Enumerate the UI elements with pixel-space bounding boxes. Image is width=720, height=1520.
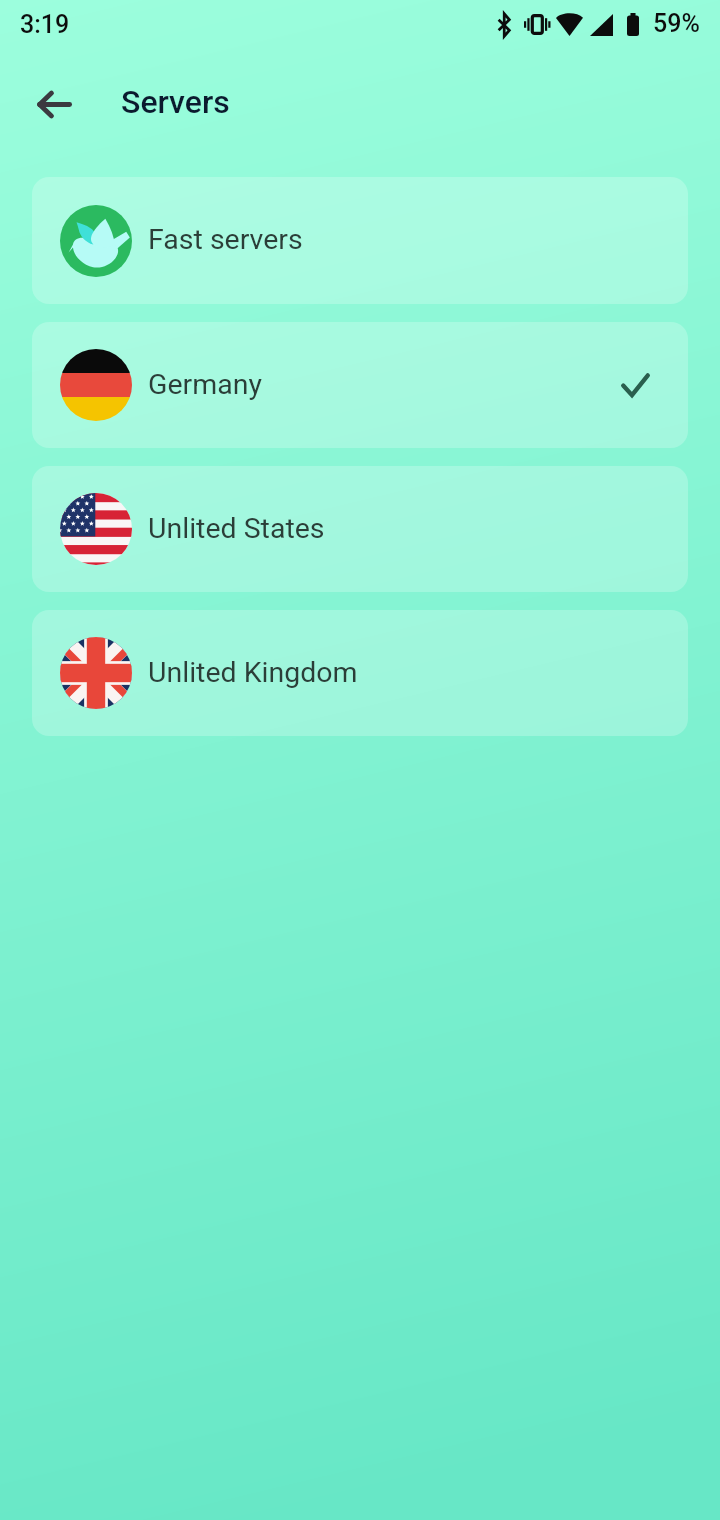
staticText: 59% bbox=[653, 9, 700, 38]
button[interactable]: Unlited Kingdom bbox=[32, 610, 688, 736]
button[interactable]: Germany bbox=[32, 322, 688, 448]
button[interactable]: Back bbox=[23, 73, 85, 135]
staticText: Fast servers bbox=[148, 223, 303, 256]
staticText: 3:19 bbox=[20, 10, 70, 39]
button[interactable]: Unlited States bbox=[32, 466, 688, 592]
staticText: Servers bbox=[121, 83, 230, 121]
staticText: Unlited States bbox=[148, 512, 325, 545]
staticText: Unlited Kingdom bbox=[148, 656, 358, 689]
button[interactable]: Fast servers bbox=[32, 177, 688, 304]
staticText: Germany bbox=[148, 368, 262, 401]
